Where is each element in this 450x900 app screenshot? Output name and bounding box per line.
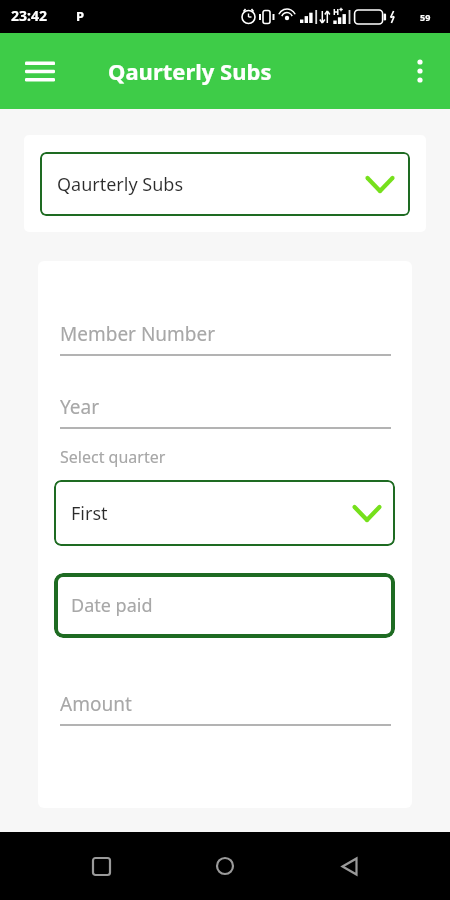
button[interactable]: Amount <box>60 691 391 726</box>
button[interactable]: Date paid <box>54 573 395 638</box>
button[interactable]: Year <box>60 394 391 429</box>
staticText: Qaurterly Subs <box>108 56 272 86</box>
button[interactable]: Recent apps <box>78 843 124 889</box>
button[interactable]: Member Number <box>60 321 391 356</box>
staticText: Member Number <box>60 321 391 347</box>
button[interactable]: Home <box>202 843 248 889</box>
staticText: Year <box>60 394 391 420</box>
button[interactable]: More options <box>398 49 442 93</box>
button[interactable]: Qaurterly Subs <box>40 152 410 216</box>
staticText: P <box>76 7 85 25</box>
staticText: Date paid <box>71 593 153 618</box>
button[interactable]: Open navigation menu <box>18 49 62 93</box>
staticText: 59 <box>420 11 431 23</box>
staticText: 23:42 <box>11 6 47 25</box>
staticText: Amount <box>60 691 391 717</box>
staticText: Select quarter <box>60 446 166 468</box>
button[interactable]: Back <box>326 843 372 889</box>
button[interactable]: First <box>54 480 395 546</box>
staticText: First <box>71 501 108 526</box>
staticText: Qaurterly Subs <box>57 172 183 197</box>
